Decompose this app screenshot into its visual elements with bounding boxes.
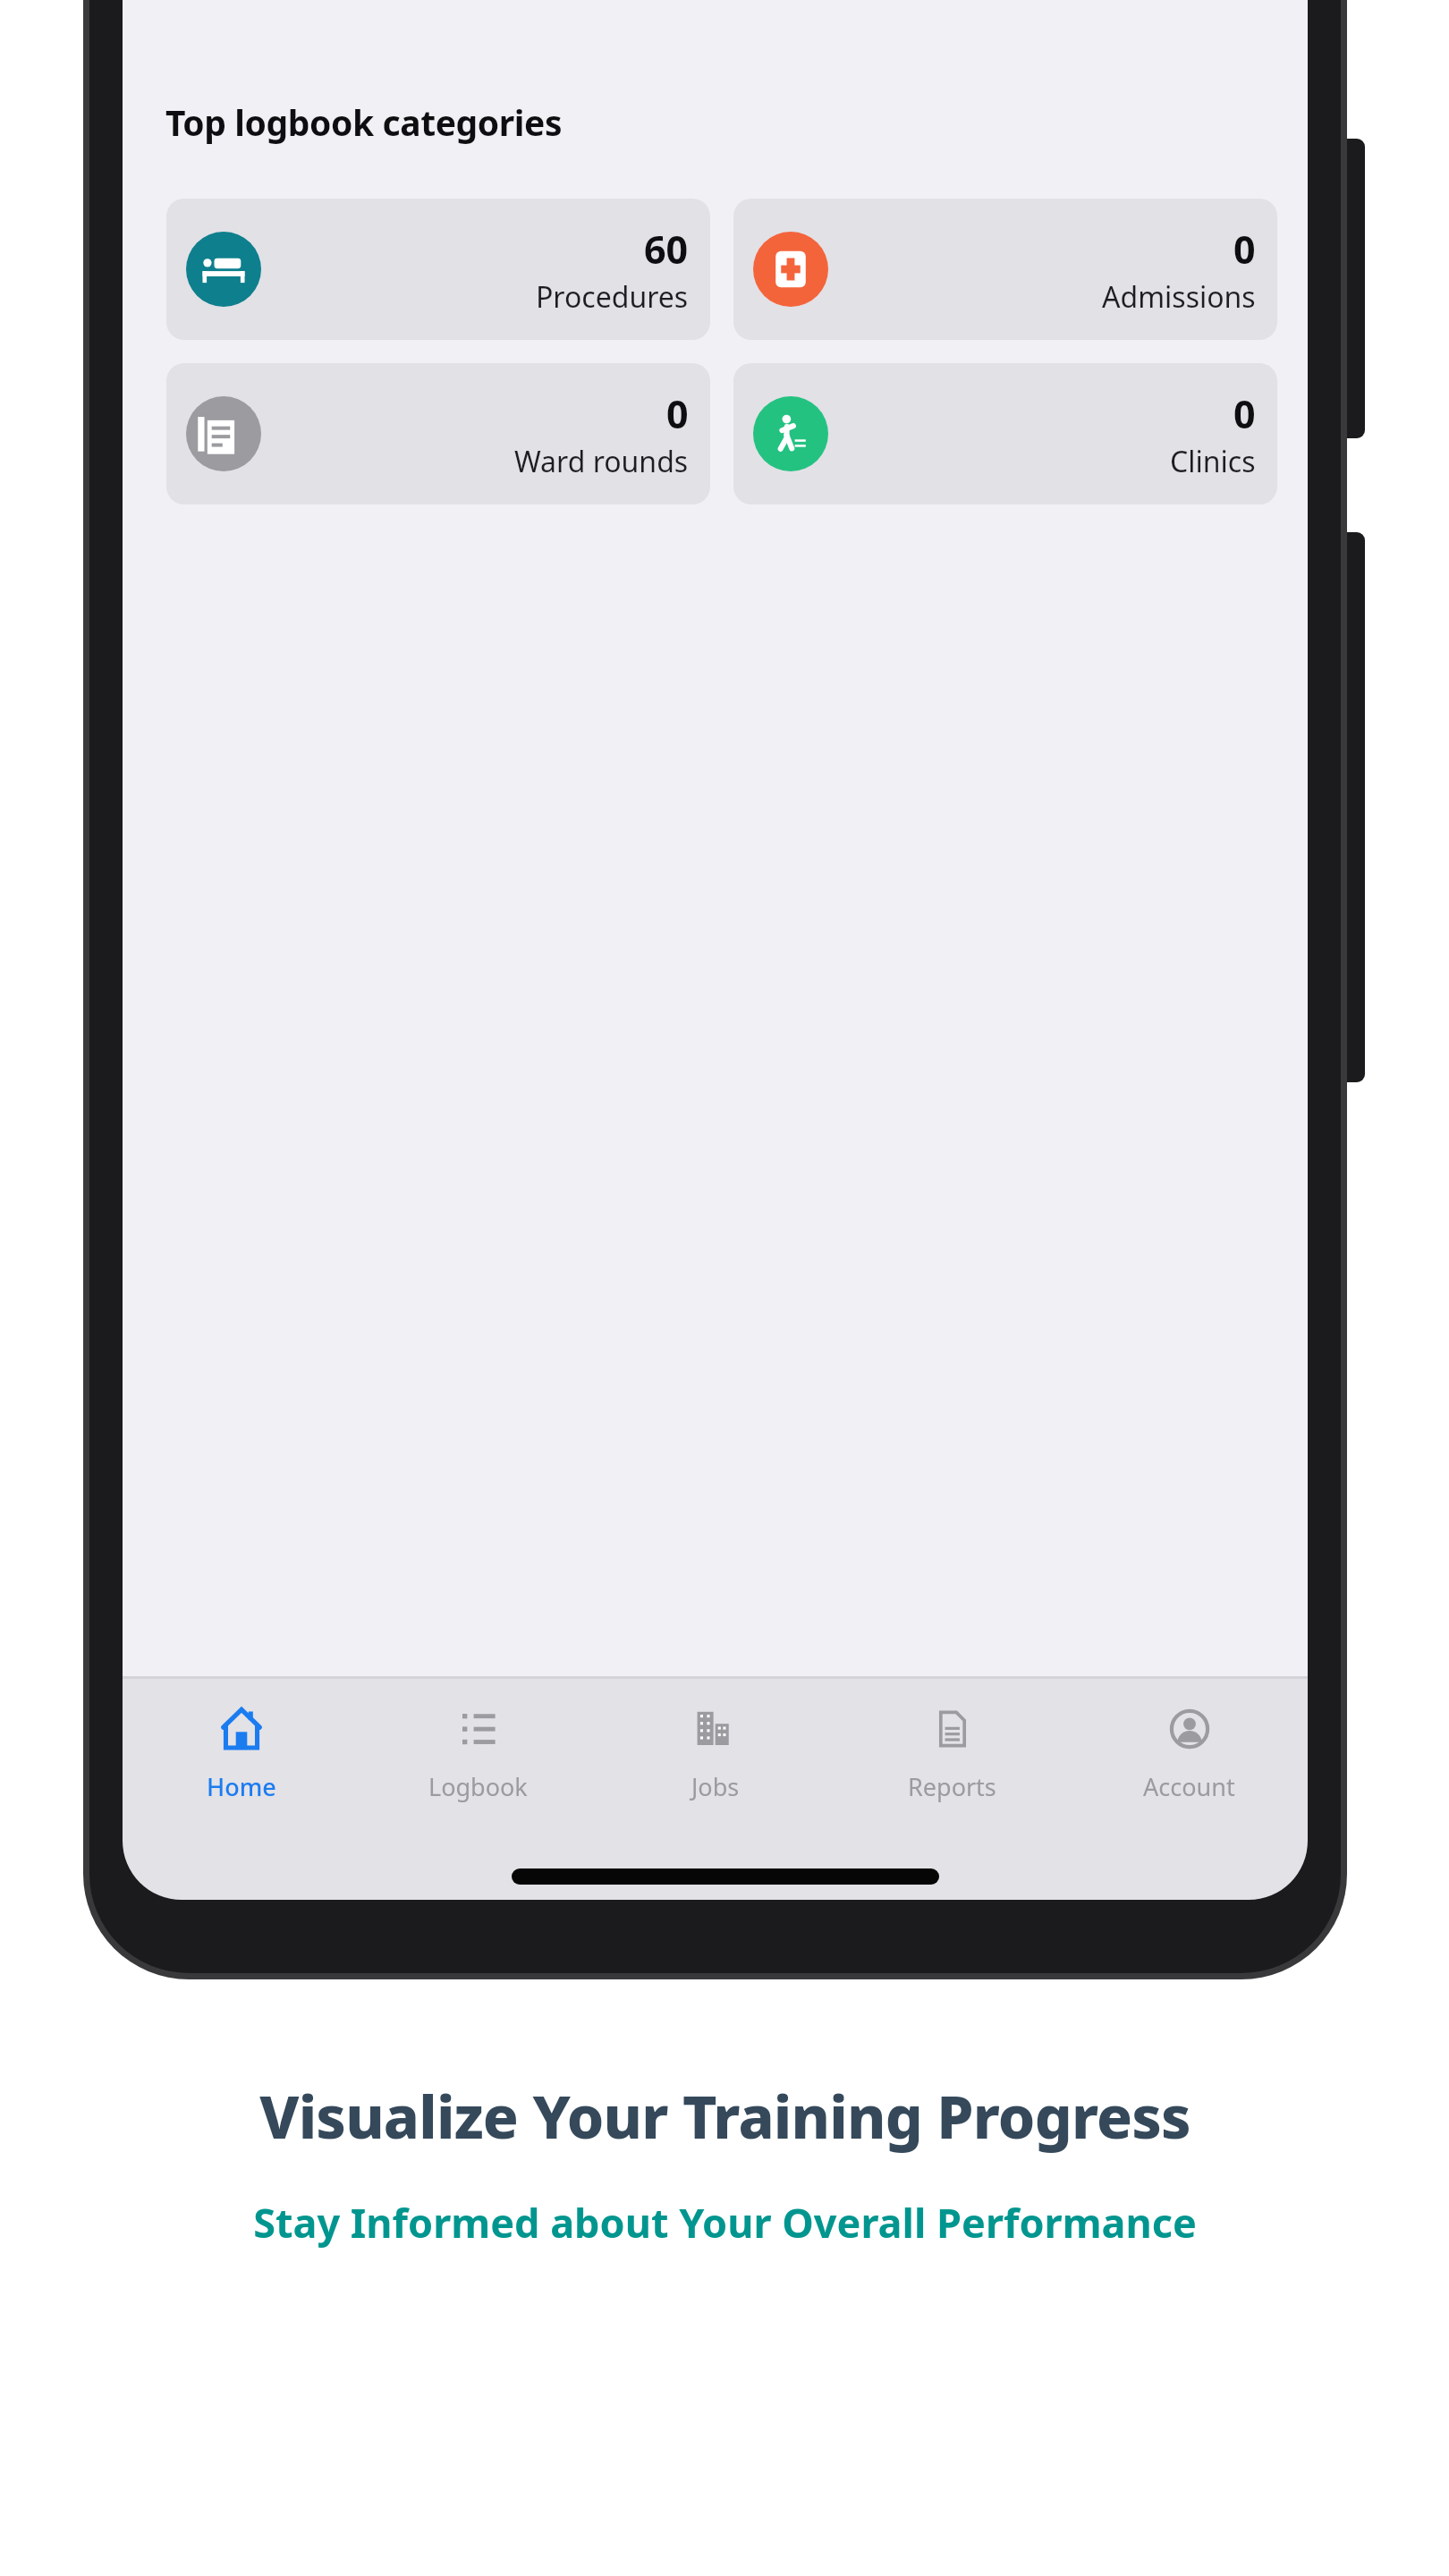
staticText: Jobs — [691, 1770, 740, 1803]
staticText: 0 — [666, 387, 689, 440]
staticText: Clinics — [1170, 442, 1256, 481]
button[interactable]: Account — [1071, 1679, 1308, 1900]
button[interactable]: Logbook — [360, 1679, 597, 1900]
button[interactable]: Reports — [834, 1679, 1071, 1900]
button[interactable]: Jobs — [597, 1679, 834, 1900]
staticText: Home — [207, 1770, 276, 1803]
staticText: Account — [1143, 1770, 1235, 1803]
staticText: Reports — [908, 1770, 996, 1803]
button[interactable]: Home — [123, 1679, 360, 1900]
staticText: 0 — [1233, 223, 1256, 275]
staticText: Top logbook categories — [165, 98, 563, 146]
staticText: Procedures — [536, 277, 689, 317]
button[interactable]: 0 — [733, 363, 1277, 504]
button[interactable]: 0 — [166, 363, 710, 504]
button[interactable]: 60 — [166, 199, 710, 340]
staticText: Logbook — [428, 1770, 528, 1803]
staticText: Visualize Your Training Progress — [259, 2075, 1191, 2156]
staticText: Stay Informed about Your Overall Perform… — [253, 2195, 1197, 2250]
staticText: Admissions — [1102, 277, 1256, 317]
staticText: Ward rounds — [514, 442, 689, 481]
staticText: 0 — [1233, 387, 1256, 440]
staticText: 60 — [644, 223, 689, 275]
button[interactable]: 0 — [733, 199, 1277, 340]
